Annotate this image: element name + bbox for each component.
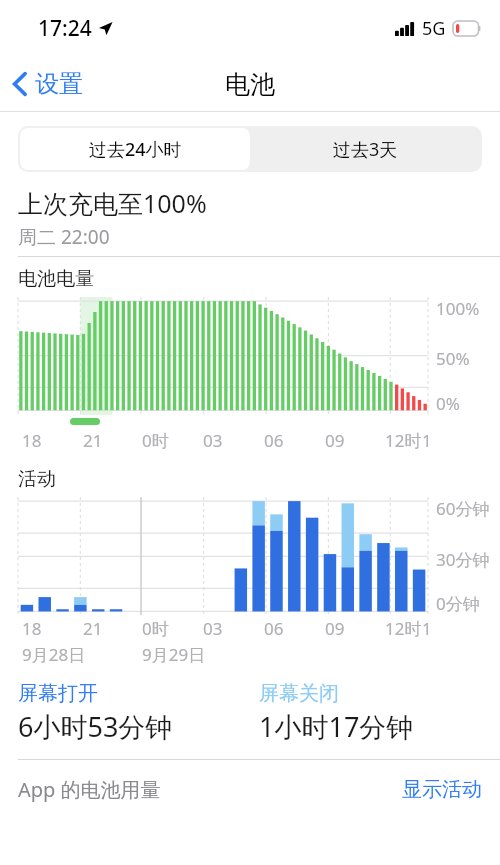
staticText: 09 — [325, 429, 345, 452]
staticText: 过去24小时 — [89, 137, 182, 162]
staticText: 1小时17分钟 — [259, 708, 414, 745]
button[interactable]: 设置 — [0, 63, 93, 105]
staticText: 9月29日 — [142, 643, 206, 666]
staticText: 60分钟 — [436, 497, 490, 520]
staticText: 9月28日 — [22, 643, 86, 666]
button[interactable]: 过去3天 — [250, 128, 480, 170]
staticText: 18 — [22, 617, 42, 640]
button[interactable]: 过去24小时 — [20, 128, 250, 170]
staticText: 0时 — [142, 617, 169, 640]
staticText: 0分钟 — [436, 592, 480, 615]
staticText: 设置 — [35, 69, 83, 99]
staticText: 50% — [436, 347, 470, 370]
staticText: 活动 — [18, 467, 56, 491]
staticText: 12时 — [385, 429, 422, 452]
staticText: 电池 — [225, 69, 275, 100]
staticText: 17:24 — [38, 14, 92, 43]
staticText: 过去3天 — [333, 137, 398, 162]
staticText: 21 — [83, 429, 103, 452]
staticText: 15 — [422, 429, 428, 453]
staticText: App 的电池用量 — [18, 776, 161, 803]
button[interactable]: 显示活动 — [402, 777, 482, 802]
staticText: 0% — [436, 392, 460, 415]
staticText: 18 — [22, 429, 42, 452]
staticText: 周二 22:00 — [18, 224, 110, 250]
staticText: 15 — [422, 617, 428, 641]
staticText: 12时 — [385, 617, 422, 640]
staticText: 0时 — [142, 429, 169, 452]
staticText: 显示活动 — [402, 777, 482, 802]
staticText: 6小时53分钟 — [18, 708, 173, 745]
staticText: 100% — [436, 297, 480, 320]
staticText: 5G — [422, 16, 446, 41]
staticText: 03 — [203, 429, 223, 452]
staticText: 30分钟 — [436, 548, 490, 571]
staticText: 屏幕打开 — [18, 681, 98, 706]
staticText: 屏幕关闭 — [259, 681, 339, 706]
staticText: 上次充电至100% — [18, 186, 207, 220]
staticText: 21 — [83, 617, 103, 640]
staticText: 电池电量 — [18, 267, 94, 291]
staticText: 03 — [203, 617, 223, 640]
staticText: 06 — [264, 429, 284, 452]
staticText: 06 — [264, 617, 284, 640]
staticText: 09 — [325, 617, 345, 640]
